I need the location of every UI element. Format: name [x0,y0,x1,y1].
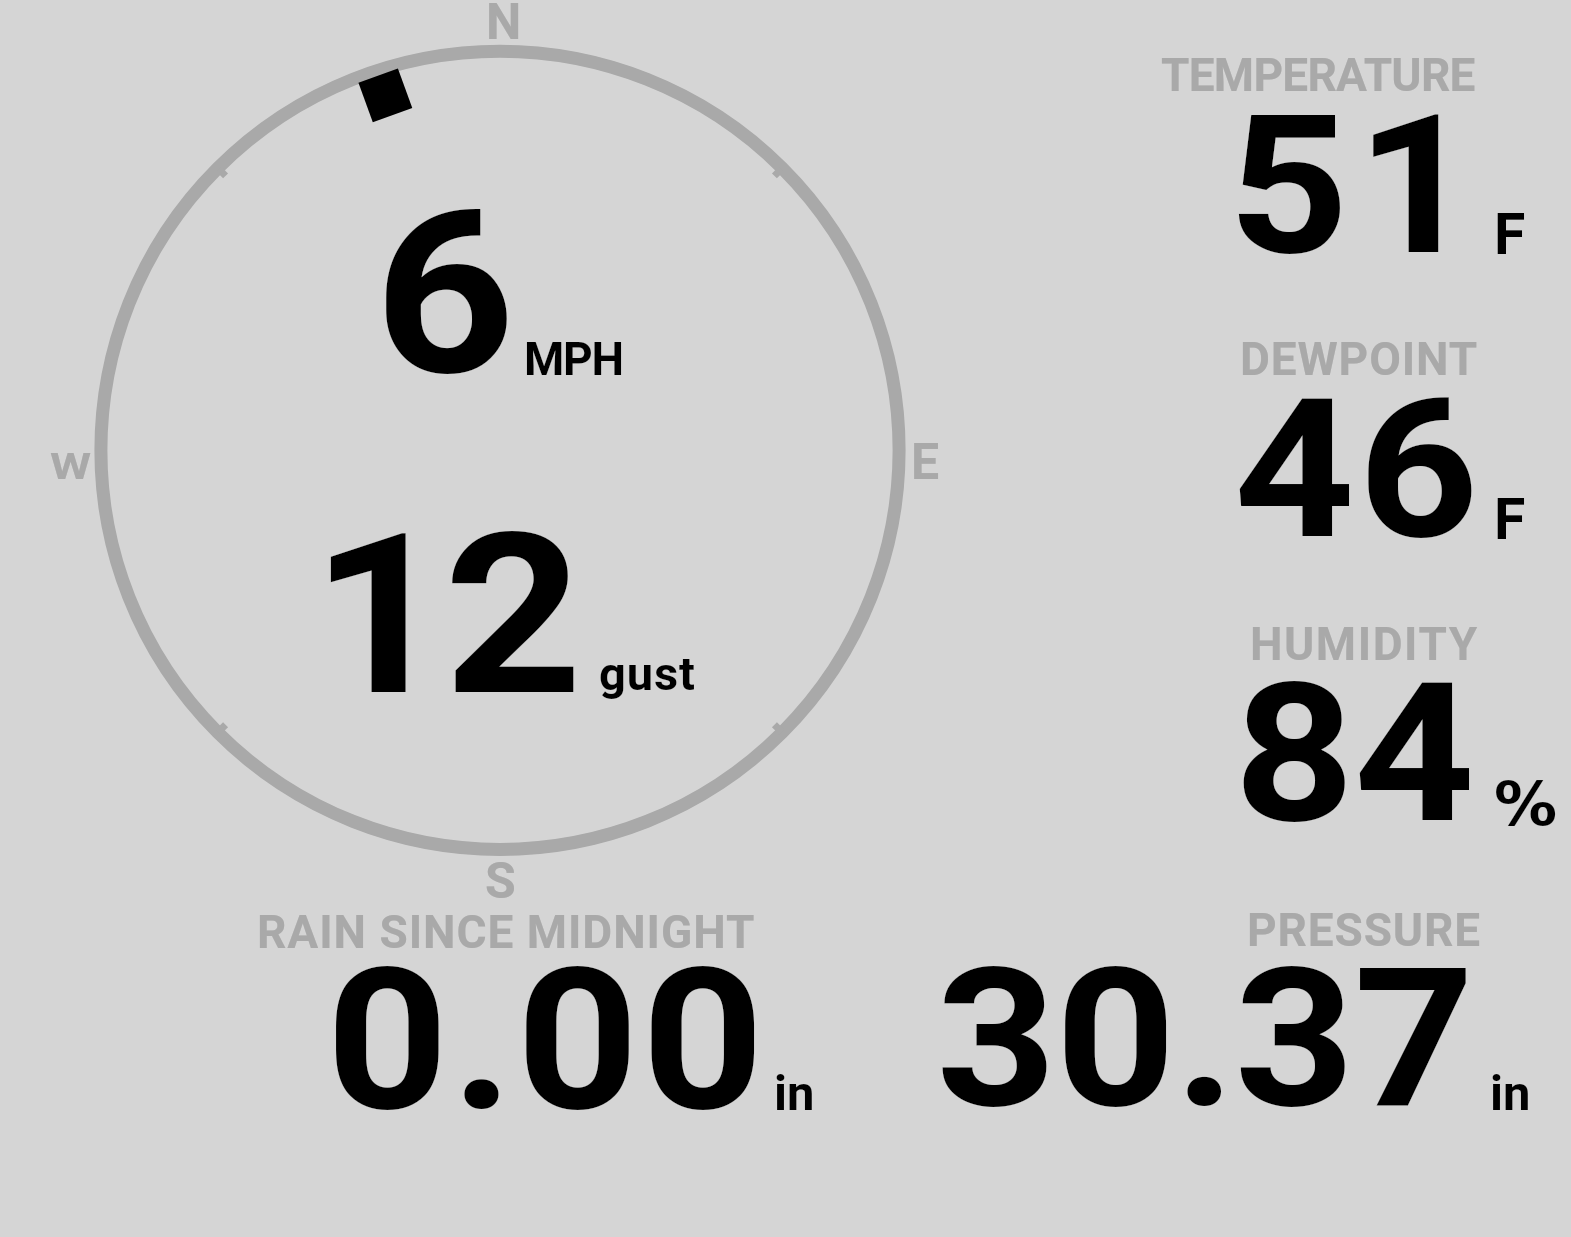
button[interactable]: Temperature 51 F [1100,30,1571,300]
staticText: 6 [374,162,516,427]
staticText: N [486,0,522,52]
staticText: gust [599,646,696,701]
staticText: F [1494,201,1526,268]
staticText: DEWPOINT [1240,332,1479,386]
staticText: in [1490,1065,1531,1122]
button[interactable]: Pressure 30.37 in [870,890,1571,1130]
staticText: 0.00 [326,926,767,1156]
staticText: PRESSURE [1247,903,1481,957]
other: Wind direction dial [0,0,1571,1237]
staticText: 51 [1228,73,1484,299]
staticText: MPH [524,332,623,386]
staticText: W [50,445,92,488]
staticText: TEMPERATURE [1161,48,1475,102]
button[interactable]: Dewpoint 46 F [1100,315,1571,585]
staticText: 12 [311,486,577,746]
staticText: F [1494,486,1526,553]
staticText: RAIN SINCE MIDNIGHT [257,905,756,959]
staticText: E [911,433,940,492]
staticText: 84 [1234,641,1475,867]
staticText: 30.37 [936,926,1473,1152]
staticText: HUMIDITY [1250,617,1479,671]
staticText: in [774,1065,815,1122]
button[interactable]: Rain since midnight 0.00 in [170,890,850,1130]
button[interactable]: Humidity 84 percent [1100,600,1571,870]
staticText: S [485,852,516,911]
button[interactable]: Wind speed and direction [40,0,960,900]
staticText: % [1494,769,1558,839]
staticText: 46 [1234,357,1482,583]
